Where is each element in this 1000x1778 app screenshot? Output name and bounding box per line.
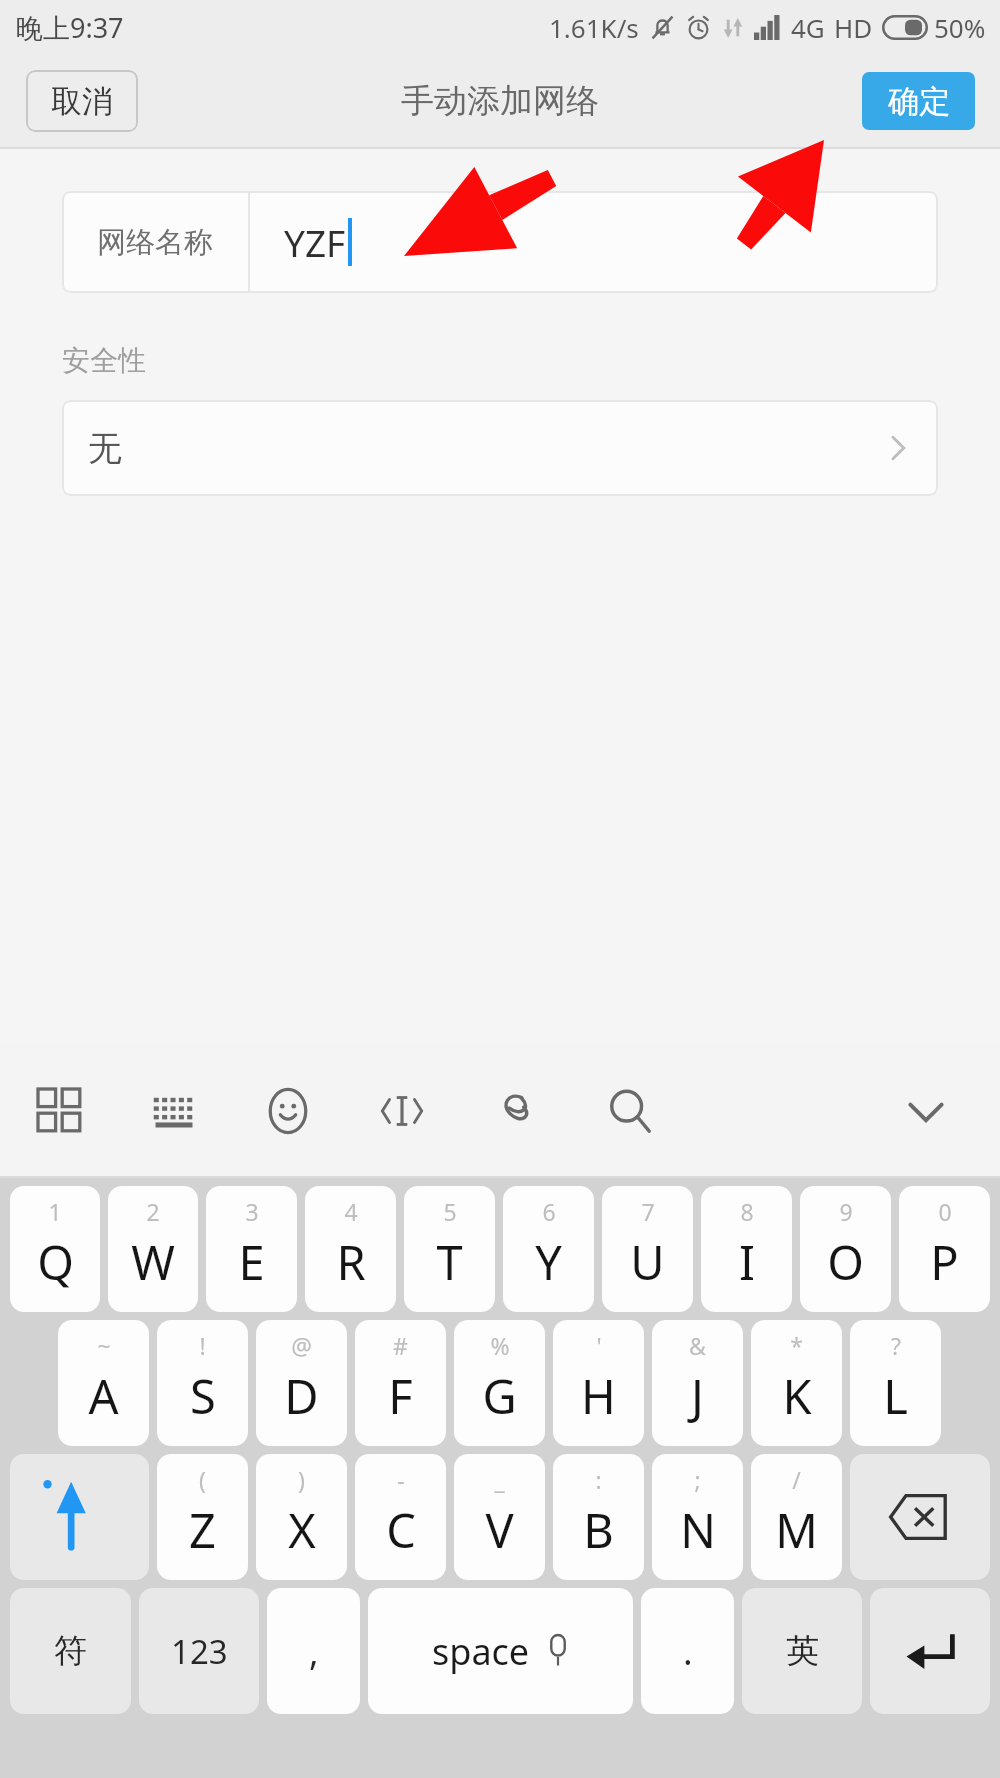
button[interactable]: 网络名称 <box>62 191 938 293</box>
staticText: 3 <box>245 1196 259 1227</box>
button[interactable]: / <box>751 1454 842 1580</box>
staticText: 手动添加网络 <box>401 80 599 122</box>
button[interactable]: ; <box>652 1454 743 1580</box>
staticText: ' <box>596 1330 602 1361</box>
staticText: ~ <box>97 1330 111 1361</box>
staticText: / <box>792 1464 801 1495</box>
staticText: ( <box>199 1464 206 1495</box>
staticText: 4 <box>344 1196 358 1227</box>
button[interactable]: ~ <box>58 1320 149 1446</box>
button[interactable]: # <box>355 1320 446 1446</box>
button[interactable]: 无 <box>62 400 938 496</box>
staticText: @ <box>291 1330 312 1361</box>
staticText: YZF <box>284 217 346 267</box>
button[interactable]: ! <box>157 1320 248 1446</box>
button[interactable]: ( <box>157 1454 248 1580</box>
staticText: B <box>583 1498 614 1562</box>
staticText: , <box>309 1627 319 1676</box>
button[interactable]: 确定 <box>862 72 975 130</box>
staticText: ; <box>694 1464 701 1495</box>
staticText: V <box>485 1498 514 1562</box>
staticText: 5 <box>443 1196 457 1227</box>
button[interactable]: 2 <box>108 1186 198 1312</box>
button[interactable]: _ <box>454 1454 545 1580</box>
button[interactable]: . <box>641 1588 734 1714</box>
staticText: 确定 <box>888 82 950 121</box>
button[interactable]: 6 <box>503 1186 594 1312</box>
staticText: 6 <box>542 1196 556 1227</box>
button[interactable]: ' <box>553 1320 644 1446</box>
staticText: ? <box>891 1330 901 1361</box>
staticText: HD <box>834 10 873 45</box>
button[interactable]: Edit cursor <box>364 1073 440 1149</box>
button[interactable]: 符 <box>10 1588 131 1714</box>
button[interactable]: 1 <box>10 1186 100 1312</box>
staticText: % <box>490 1330 510 1361</box>
button[interactable]: 取消 <box>26 70 138 132</box>
staticText: ! <box>199 1330 206 1361</box>
button[interactable]: 9 <box>800 1186 891 1312</box>
staticText: E <box>238 1230 265 1294</box>
button[interactable]: Enter <box>870 1588 990 1714</box>
button[interactable]: % <box>454 1320 545 1446</box>
staticText: 1 <box>48 1196 62 1227</box>
button[interactable]: ? <box>850 1320 941 1446</box>
staticText: D <box>284 1364 319 1428</box>
staticText: : <box>595 1464 602 1495</box>
staticText: O <box>827 1230 864 1294</box>
staticText: 符 <box>54 1630 87 1672</box>
button[interactable]: , <box>267 1588 360 1714</box>
staticText: J <box>691 1364 704 1428</box>
button[interactable]: Emoji <box>250 1073 326 1149</box>
staticText: 网络名称 <box>97 224 213 261</box>
staticText: Y <box>535 1230 562 1294</box>
staticText: space <box>432 1627 530 1676</box>
staticText: _ <box>494 1464 505 1495</box>
staticText: K <box>782 1364 812 1428</box>
staticText: H <box>581 1364 616 1428</box>
button[interactable]: 3 <box>206 1186 297 1312</box>
button[interactable]: 5 <box>404 1186 495 1312</box>
button[interactable]: @ <box>256 1320 347 1446</box>
staticText: N <box>680 1498 716 1562</box>
staticText: F <box>388 1364 413 1428</box>
staticText: R <box>336 1230 366 1294</box>
button[interactable]: Backspace <box>850 1454 990 1580</box>
staticText: I <box>739 1230 755 1294</box>
button[interactable]: & <box>652 1320 743 1446</box>
button[interactable]: 英 <box>742 1588 862 1714</box>
staticText: 9 <box>839 1196 853 1227</box>
staticText: 英 <box>786 1630 819 1672</box>
button[interactable]: 8 <box>701 1186 792 1312</box>
button[interactable]: 123 <box>139 1588 259 1714</box>
staticText: * <box>790 1330 803 1361</box>
button[interactable]: * <box>751 1320 842 1446</box>
button[interactable]: 7 <box>602 1186 693 1312</box>
button[interactable]: ) <box>256 1454 347 1580</box>
button[interactable]: : <box>553 1454 644 1580</box>
button[interactable]: - <box>355 1454 446 1580</box>
staticText: 2 <box>146 1196 160 1227</box>
button[interactable]: Clipboard <box>478 1073 554 1149</box>
staticText: G <box>482 1364 517 1428</box>
staticText: 50% <box>934 10 986 45</box>
button[interactable]: 4 <box>305 1186 396 1312</box>
button[interactable]: Shift <box>10 1454 149 1580</box>
staticText: M <box>775 1498 818 1562</box>
button[interactable]: Hide keyboard <box>888 1073 964 1149</box>
button[interactable]: Panels <box>22 1073 98 1149</box>
staticText: W <box>131 1230 175 1294</box>
button[interactable]: Keyboard layout <box>136 1073 212 1149</box>
staticText: 0 <box>938 1196 952 1227</box>
button[interactable]: 0 <box>899 1186 990 1312</box>
staticText: A <box>88 1364 119 1428</box>
staticText: 无 <box>88 427 122 470</box>
staticText: 4G <box>791 10 825 45</box>
staticText: T <box>436 1230 463 1294</box>
staticText: Z <box>189 1498 216 1562</box>
staticText: X <box>288 1498 316 1562</box>
staticText: L <box>883 1364 908 1428</box>
button[interactable]: space <box>368 1588 633 1714</box>
button[interactable]: Search <box>592 1073 668 1149</box>
staticText: 1.61K/s <box>549 10 639 45</box>
